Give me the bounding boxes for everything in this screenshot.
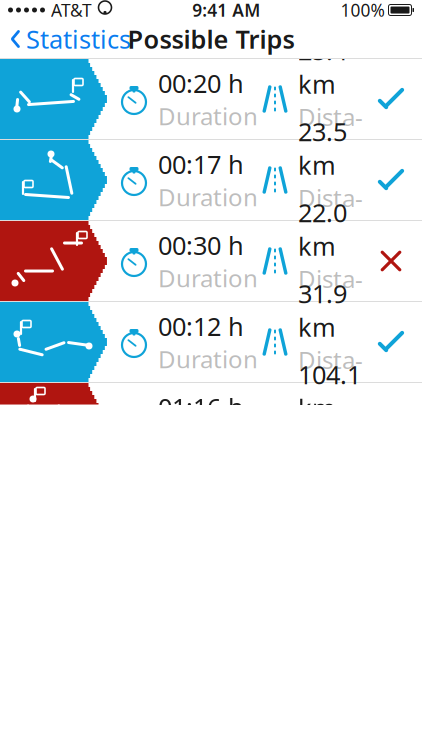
staticText: 31.9 km bbox=[298, 276, 347, 344]
staticText: Duration bbox=[158, 181, 258, 213]
staticText: 00:17 h bbox=[158, 147, 244, 181]
staticText: Statistics bbox=[26, 22, 131, 56]
staticText: Distance bbox=[298, 263, 363, 326]
staticText: 23.5 km bbox=[298, 114, 347, 182]
staticText: 104.1 km bbox=[298, 357, 361, 425]
staticText: 00:30 h bbox=[158, 228, 244, 262]
button[interactable]: 00:17 h bbox=[0, 140, 422, 221]
staticText: Distance bbox=[298, 101, 363, 164]
button[interactable]: 00:12 h bbox=[0, 302, 422, 383]
staticText: Possible Trips bbox=[127, 22, 294, 56]
staticText: AT&T bbox=[51, 0, 92, 21]
staticText: 22.0 km bbox=[298, 195, 347, 263]
button[interactable]: 00:20 h bbox=[0, 59, 422, 140]
staticText: Duration bbox=[158, 262, 258, 294]
button[interactable]: Statistics bbox=[0, 20, 141, 58]
staticText: Distance bbox=[298, 182, 363, 245]
button[interactable]: 01:16 h bbox=[0, 383, 422, 464]
staticText: 100% bbox=[340, 0, 384, 21]
staticText: Duration bbox=[158, 343, 258, 375]
staticText: 01:16 h bbox=[158, 390, 244, 424]
staticText: 00:20 h bbox=[158, 66, 244, 100]
button[interactable]: 00:30 h bbox=[0, 221, 422, 302]
staticText: 25.4 km bbox=[298, 33, 347, 101]
staticText: Distance bbox=[298, 344, 363, 407]
staticText: 9:41 AM bbox=[192, 0, 260, 21]
staticText: 00:12 h bbox=[158, 309, 244, 343]
staticText: Duration bbox=[158, 100, 258, 132]
